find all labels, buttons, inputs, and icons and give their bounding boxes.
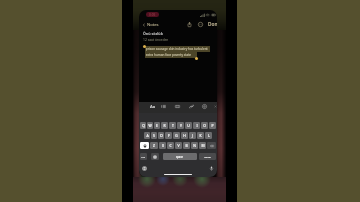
button[interactable]: F [165,132,172,139]
button[interactable]: Attach [188,103,195,110]
staticText: H [183,133,186,138]
button[interactable]: O [201,122,208,129]
staticText: S [153,133,155,138]
staticText: C [169,143,172,148]
button[interactable]: Emoji keyboard [142,166,147,171]
staticText: Önü sözlük [143,31,163,36]
staticText: Q [142,123,145,128]
staticText: F [168,133,170,138]
button[interactable]: C [167,142,174,149]
button[interactable]: Return [199,153,216,160]
staticText: X [162,143,164,148]
staticText: M [201,143,205,148]
staticText: O [203,123,206,128]
staticText: 12 saat önceden [143,37,169,41]
button[interactable]: Checklist [160,103,167,110]
staticText: V [177,143,180,148]
button[interactable]: Camera [201,103,208,110]
staticText: Aa [150,104,156,110]
button[interactable]: B [183,142,190,149]
staticText: Z [153,143,155,148]
button[interactable]: R [161,122,168,129]
button[interactable]: Notes [141,21,160,29]
button[interactable]: L [205,132,212,139]
button[interactable]: Shift [140,142,149,149]
staticText: R [163,123,166,128]
button[interactable]: V [175,142,182,149]
staticText: T [172,123,174,128]
staticText: J [192,133,193,138]
staticText: A [146,133,149,138]
button[interactable]: D [158,132,164,139]
button[interactable]: Emoji [151,153,159,160]
button[interactable]: T [169,122,176,129]
button[interactable]: A [144,132,150,139]
staticText: E [156,123,158,128]
button[interactable]: Z [150,142,158,149]
button[interactable]: U [185,122,192,129]
staticText: 0:05 [149,13,156,17]
staticText: G [175,133,178,138]
button[interactable]: J [189,132,196,139]
button[interactable]: Done [207,20,217,29]
button[interactable]: Share [186,21,193,28]
button[interactable]: Text format [149,103,156,110]
button[interactable]: Table [174,103,181,110]
staticText: space [176,155,184,159]
button[interactable]: N [191,142,198,149]
staticText: 123 [141,155,146,158]
button[interactable]: space [163,153,197,160]
staticText: D [160,133,163,138]
staticText: I [196,123,198,128]
button[interactable]: I [193,122,200,129]
staticText: Notes [147,22,159,28]
button[interactable]: P [209,122,216,129]
staticText: U [187,123,190,128]
staticText: B [185,143,188,148]
staticText: N [193,143,196,148]
staticText: L [208,133,210,138]
button[interactable]: Dictation [209,166,214,171]
staticText: Y [180,123,182,128]
button[interactable]: E [154,122,160,129]
button[interactable]: G [173,132,180,139]
staticText: K [199,133,202,138]
button[interactable]: Close [212,103,217,110]
button[interactable]: Numbers [140,153,147,160]
button[interactable]: S [151,132,157,139]
staticText: P [211,123,214,128]
button[interactable]: Y [177,122,184,129]
button[interactable]: X [159,142,166,149]
button[interactable]: H [181,132,188,139]
button[interactable]: Q [140,122,146,129]
staticText: W [148,123,152,128]
button[interactable]: W [147,122,153,129]
staticText: return [204,155,212,158]
button[interactable]: Backspace [207,142,216,149]
staticText: prison sausage skin industry has turbule… [145,47,210,51]
button[interactable]: More options [197,21,204,28]
button[interactable]: M [199,142,206,149]
button[interactable]: K [197,132,204,139]
staticText: extra human face poverty state breed wid… [145,53,197,57]
staticText: Done [208,21,217,28]
